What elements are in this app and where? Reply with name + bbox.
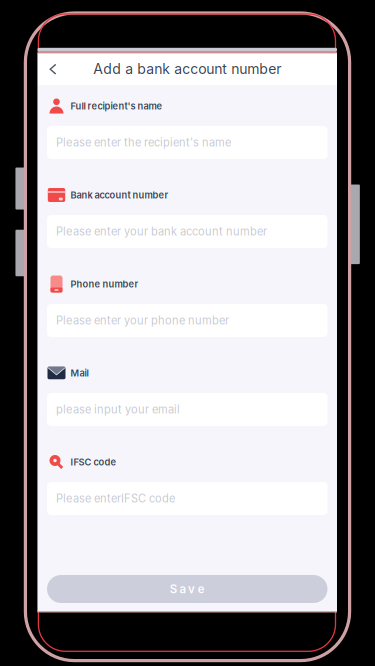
- staticText: Phone number: [70, 278, 138, 290]
- button[interactable]: please input your email: [47, 393, 327, 426]
- staticText: Please enter the recipient's name: [56, 136, 231, 149]
- staticText: Please enter your bank account number: [56, 225, 267, 238]
- button[interactable]: Save: [47, 575, 327, 603]
- button[interactable]: Back: [37, 53, 67, 85]
- staticText: IFSC code: [70, 456, 116, 468]
- staticText: Save: [170, 582, 205, 596]
- staticText: Mail: [70, 367, 88, 379]
- staticText: Bank account number: [70, 189, 168, 201]
- staticText: please input your email: [56, 403, 180, 416]
- button[interactable]: Please enter the recipient's name: [47, 126, 327, 159]
- button[interactable]: Please enter your bank account number: [47, 215, 327, 248]
- staticText: Add a bank account number: [93, 60, 281, 77]
- staticText: Please enter your phone number: [56, 314, 229, 327]
- button[interactable]: Please enterIFSC code: [47, 482, 327, 515]
- button[interactable]: Please enter your phone number: [47, 304, 327, 337]
- staticText: Full recipient's name: [70, 100, 162, 112]
- staticText: Please enterIFSC code: [56, 492, 175, 505]
